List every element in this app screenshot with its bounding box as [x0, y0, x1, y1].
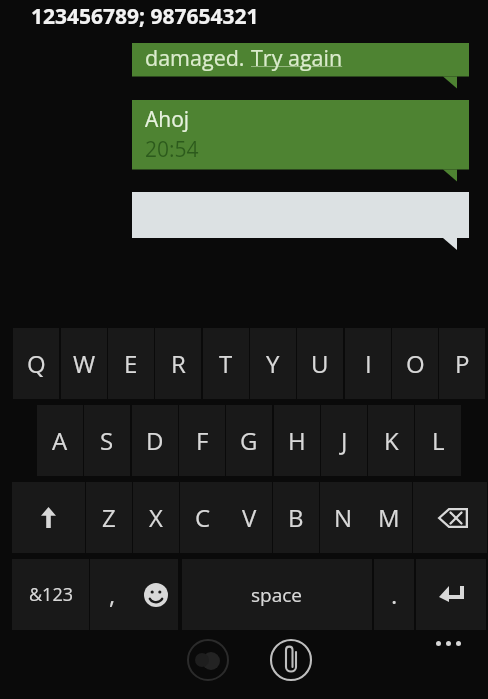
button[interactable]: X [133, 482, 179, 553]
staticText: E [124, 347, 138, 380]
button[interactable]: Emoticons [187, 639, 229, 681]
staticText: K [384, 424, 399, 457]
button[interactable]: F [179, 405, 225, 476]
button[interactable]: More options [431, 632, 465, 654]
button[interactable]: U [297, 328, 343, 399]
button[interactable]: E [108, 328, 154, 399]
button[interactable]: R [155, 328, 201, 399]
button[interactable]: H [274, 405, 320, 476]
button[interactable]: . [374, 559, 414, 630]
button[interactable]: &123 [12, 559, 89, 630]
button[interactable]: Enter [416, 559, 486, 630]
button[interactable]: Z [86, 482, 132, 553]
staticText: I [365, 347, 372, 380]
staticText: , [109, 578, 116, 611]
button[interactable]: Emoji [134, 559, 178, 630]
staticText: . [391, 578, 398, 611]
staticText: U [311, 347, 329, 380]
button[interactable]: O [392, 328, 438, 399]
button[interactable]: B [273, 482, 319, 553]
button[interactable]: D [132, 405, 178, 476]
staticText: damaged. [145, 43, 251, 72]
other: Enter [439, 586, 464, 602]
button[interactable]: V [226, 482, 272, 553]
button[interactable]: Attach [270, 639, 312, 681]
button[interactable]: Q [13, 328, 59, 399]
button[interactable]: W [61, 328, 107, 399]
button[interactable]: Y [250, 328, 296, 399]
button[interactable]: A [37, 405, 83, 476]
button[interactable]: C [180, 482, 226, 553]
staticText: space [251, 582, 303, 608]
other: Backspace [438, 508, 468, 528]
staticText: M [378, 501, 400, 534]
staticText: F [196, 424, 209, 457]
button[interactable]: , [90, 559, 134, 630]
staticText: A [52, 424, 68, 457]
staticText: V [242, 501, 257, 534]
button[interactable]: L [415, 405, 461, 476]
staticText: H [288, 424, 306, 457]
staticText: D [146, 424, 164, 457]
staticText: O [406, 347, 425, 380]
staticText: B [288, 501, 304, 534]
staticText: &123 [29, 582, 73, 607]
button[interactable]: N [320, 482, 366, 553]
staticText: Z [102, 501, 116, 534]
button[interactable]: K [368, 405, 414, 476]
staticText: J [341, 424, 348, 457]
button[interactable]: M [366, 482, 412, 553]
staticText: Q [27, 347, 46, 380]
staticText: P [455, 347, 470, 380]
staticText: X [149, 501, 163, 534]
staticText: T [219, 347, 233, 380]
button[interactable]: J [321, 405, 367, 476]
button[interactable]: I [345, 328, 391, 399]
button[interactable]: G [226, 405, 272, 476]
button[interactable]: S [84, 405, 130, 476]
staticText: R [171, 347, 186, 380]
staticText: G [240, 424, 258, 457]
other: Emoji [144, 583, 168, 607]
staticText: L [432, 424, 445, 457]
staticText: N [334, 501, 353, 534]
staticText: 123456789; 987654321 [31, 2, 259, 31]
staticText: Y [266, 347, 280, 380]
staticText: W [73, 347, 96, 380]
other: Shift [41, 507, 56, 528]
button[interactable]: space [182, 559, 372, 630]
staticText: Try again [251, 43, 343, 72]
button[interactable]: Backspace [413, 482, 487, 553]
staticText: C [195, 501, 211, 534]
staticText: Ahoj [145, 105, 190, 134]
staticText: S [100, 424, 114, 457]
button[interactable]: T [203, 328, 249, 399]
button[interactable]: Shift [12, 482, 85, 553]
button[interactable]: P [439, 328, 485, 399]
staticText: 20:54 [145, 135, 199, 164]
